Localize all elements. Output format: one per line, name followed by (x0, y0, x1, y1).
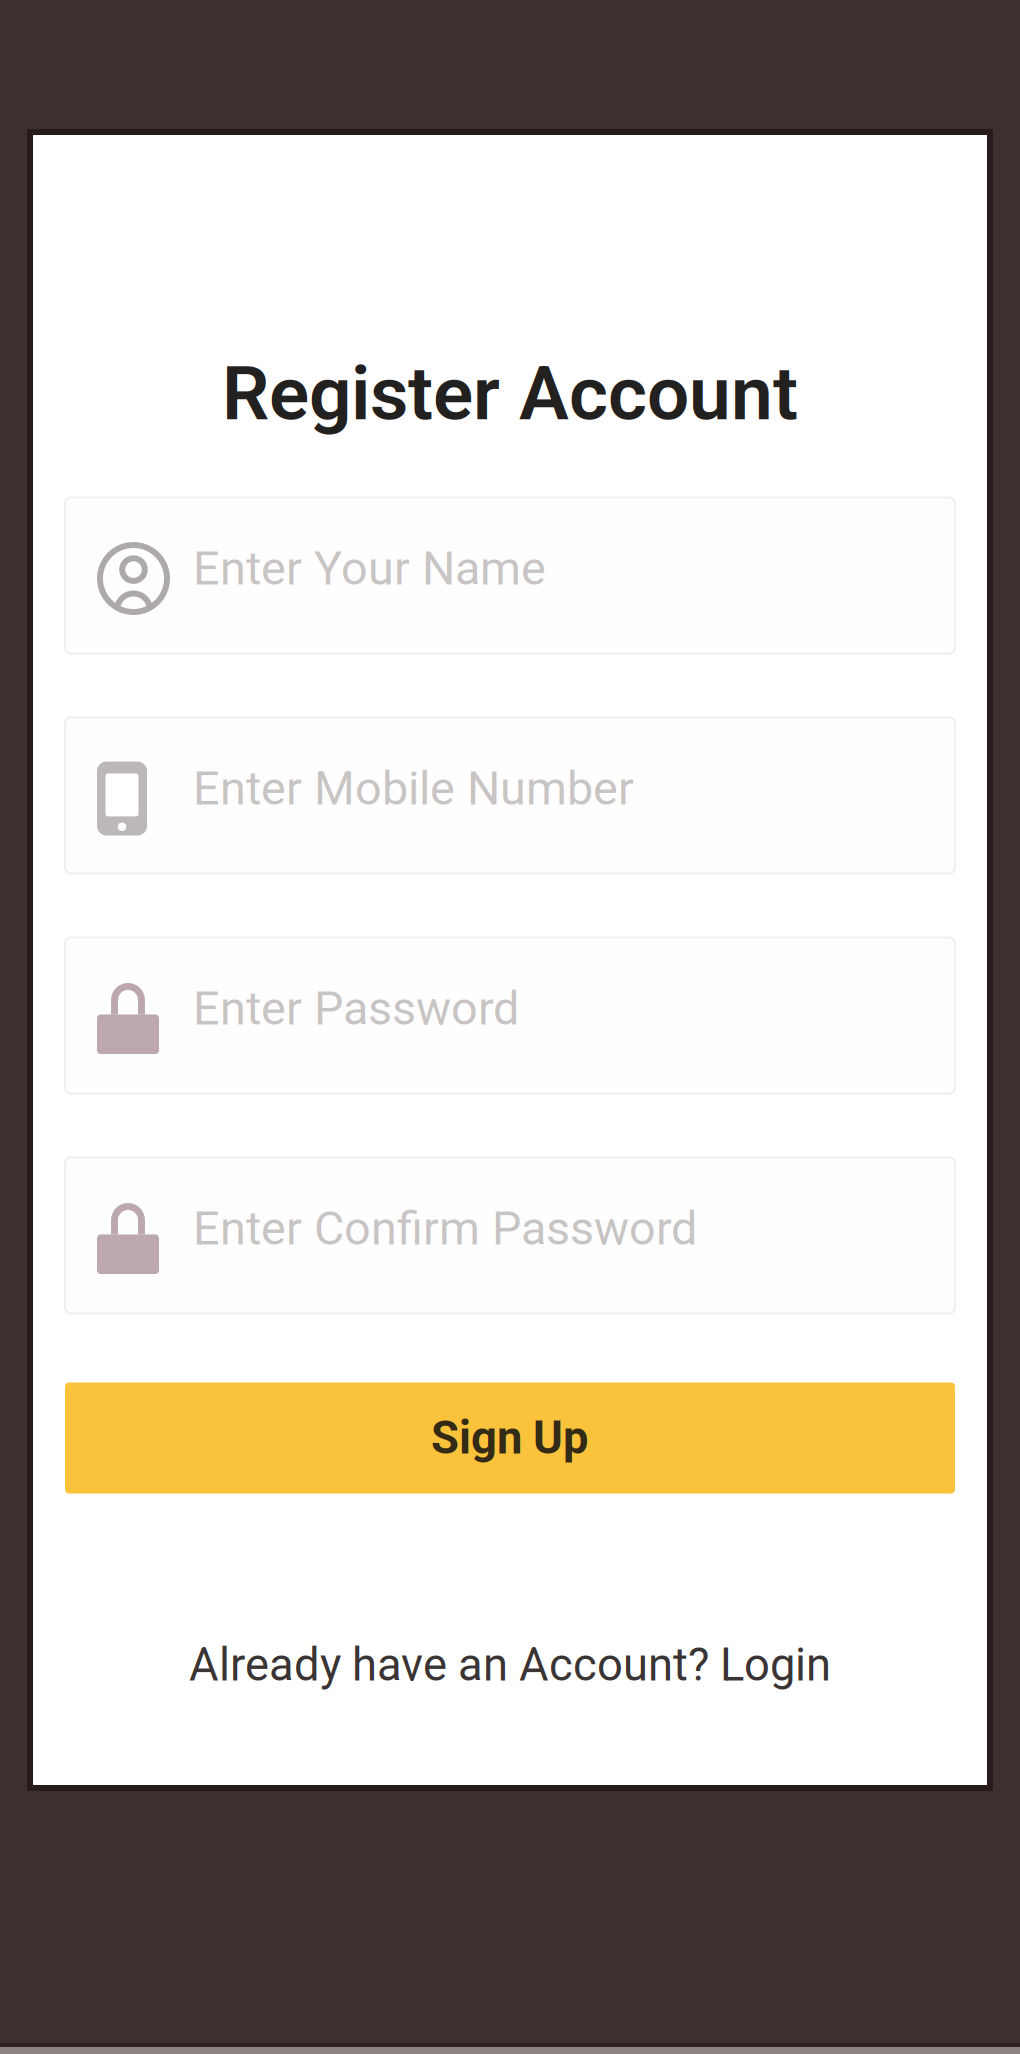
staticText: Enter Confirm Password (193, 1201, 697, 1256)
staticText: Enter Mobile Number (193, 761, 634, 816)
button[interactable]: Already have an Account? Login (189, 1638, 831, 1692)
staticText: Enter Password (193, 981, 519, 1036)
staticText: Sign Up (431, 1411, 589, 1464)
button[interactable]: Enter Password (65, 937, 955, 1093)
staticText: Register Account (222, 350, 798, 437)
button[interactable]: Enter Confirm Password (65, 1157, 955, 1313)
staticText: Enter Your Name (193, 541, 546, 596)
button[interactable]: Sign Up (65, 1382, 955, 1493)
staticText: Already have an Account? Login (189, 1638, 831, 1692)
button[interactable]: Enter Mobile Number (65, 717, 955, 873)
button[interactable]: Enter Your Name (65, 497, 955, 653)
